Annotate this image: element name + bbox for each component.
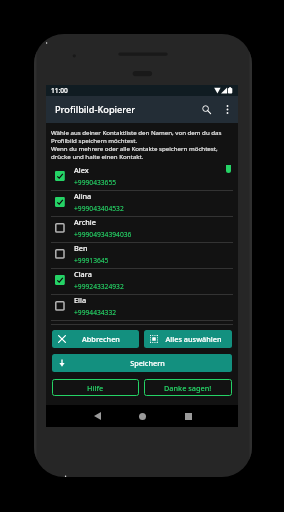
staticText: +99913645 [74,256,109,265]
staticText: Hilfe [87,383,104,393]
staticText: Danke sagen! [164,383,212,393]
staticText: +999043404532 [74,204,124,213]
staticText: Speichern [130,358,165,368]
button[interactable]: Abbrechen [52,330,139,348]
staticText: Alles auswählen [165,334,222,344]
staticText: 11:00 [51,86,68,95]
staticText: Alina [74,191,92,201]
staticText: Profilbild-Kopierer [55,103,136,116]
staticText: Emil [74,321,89,325]
staticText: Archie [74,217,96,227]
staticText: +99904934394036 [74,230,132,239]
button[interactable]: Search [196,99,217,120]
button[interactable]: Recent apps [180,408,196,424]
button[interactable]: Speichern [52,354,232,372]
button[interactable]: Home [134,408,150,424]
button[interactable]: Alex [46,165,238,191]
button[interactable]: Hilfe [52,379,139,396]
button[interactable]: Ella [46,295,238,321]
button[interactable]: Clara [46,269,238,295]
button[interactable]: More options [217,99,238,120]
staticText: Ella [74,295,87,305]
staticText: +9994434332 [74,308,117,317]
staticText: Ben [74,243,88,253]
button[interactable]: Emil [46,321,238,325]
button[interactable]: Danke sagen! [144,379,232,396]
button[interactable]: Back [89,408,105,424]
staticText: Clara [74,269,92,279]
button[interactable]: Alina [46,191,238,217]
staticText: +9990433655 [74,178,117,187]
button[interactable]: Archie [46,217,238,243]
button[interactable]: Ben [46,243,238,269]
staticText: +999243324932 [74,282,124,291]
button[interactable]: Alles auswählen [144,330,232,348]
staticText: Alex [74,165,89,175]
staticText: Abbrechen [82,334,120,344]
staticText: Wenn du mehrere oder alle Kontakte speic… [51,144,233,160]
staticText: Wähle aus deiner Kontaktliste den Namen,… [51,128,233,144]
